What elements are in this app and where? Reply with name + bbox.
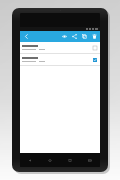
button[interactable]: Share: [70, 32, 79, 41]
button[interactable]: Not selected: [20, 42, 100, 53]
button[interactable]: Not selected: [91, 44, 98, 51]
button[interactable]: Home: [45, 154, 55, 166]
button[interactable]: Recents: [65, 154, 75, 166]
button[interactable]: Copy: [80, 32, 89, 41]
button[interactable]: Selected: [20, 54, 100, 65]
button[interactable]: Back: [25, 154, 35, 166]
button[interactable]: Selected: [91, 56, 98, 63]
button[interactable]: Back: [22, 32, 31, 41]
button[interactable]: Delete: [90, 32, 99, 41]
button[interactable]: Menu: [85, 154, 95, 166]
button[interactable]: Preview: [60, 32, 69, 41]
